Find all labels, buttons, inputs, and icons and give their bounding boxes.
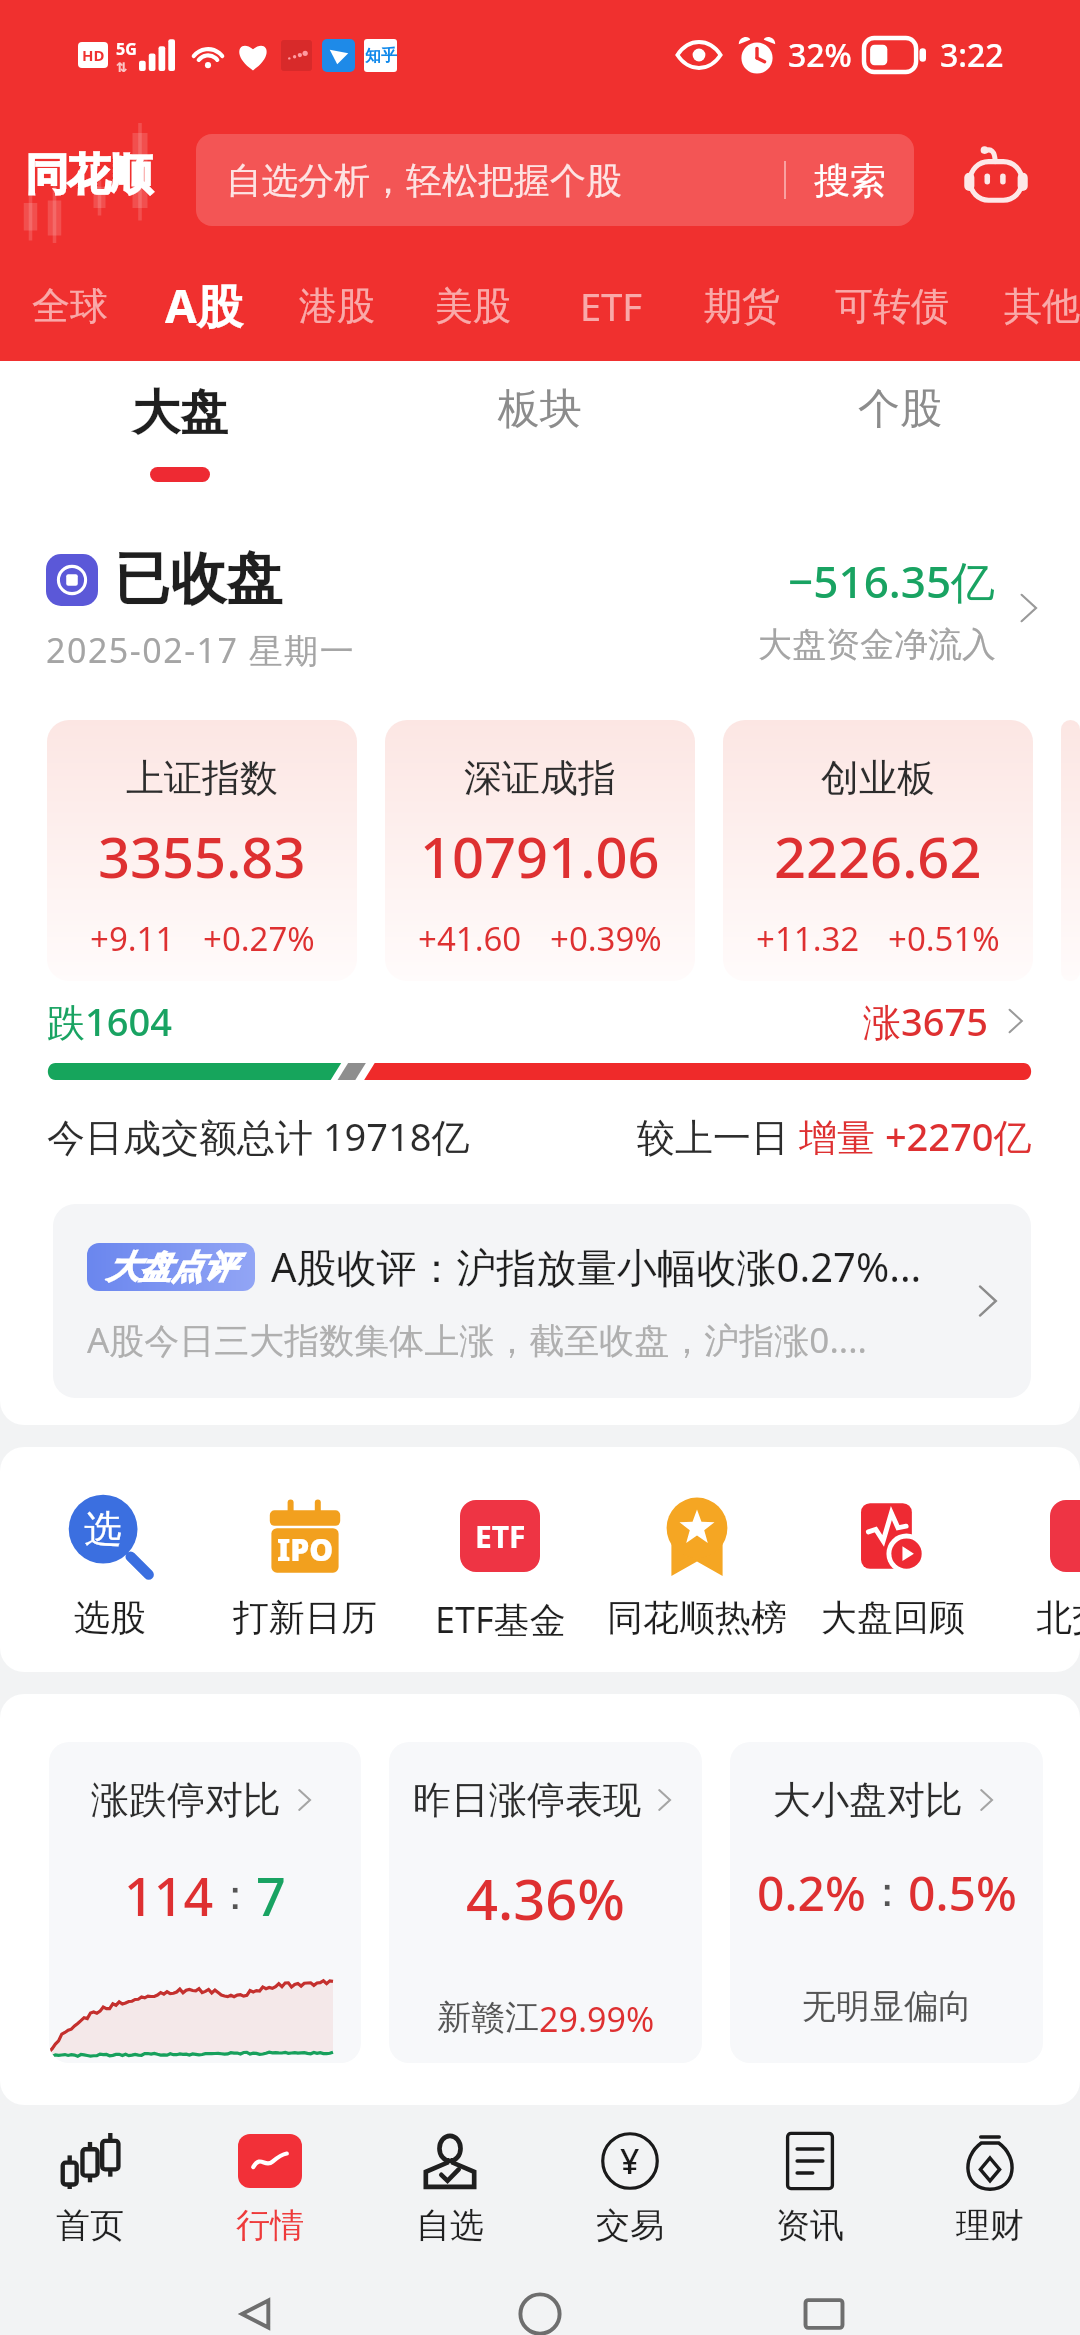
button[interactable]: 深证成指: [385, 720, 695, 981]
staticText: 北交所: [1036, 1595, 1080, 1640]
staticText: 5G: [116, 38, 137, 60]
staticText: HD: [82, 45, 105, 65]
button[interactable]: 已收盘: [0, 533, 1080, 683]
staticText: ：: [866, 1866, 908, 1919]
staticText: 创业板: [821, 754, 935, 802]
button[interactable]: 个股: [800, 361, 1000, 501]
staticText: 0.2%: [757, 1860, 866, 1925]
staticText: 增量 +2270亿: [799, 1110, 1032, 1162]
button[interactable]: 全球: [0, 250, 150, 361]
staticText: 已收盘: [114, 544, 282, 615]
button[interactable]: 涨跌停对比: [49, 1742, 361, 2063]
staticText: 打新日历: [233, 1595, 377, 1640]
button[interactable]: 板块: [440, 361, 640, 501]
button[interactable]: 理财: [900, 2121, 1080, 2255]
staticText: 个股: [858, 383, 942, 436]
staticText: 跌1604: [47, 995, 172, 1047]
staticText: 选股: [74, 1595, 146, 1640]
staticText: −516.35亿: [788, 551, 996, 611]
staticText: 自选: [416, 2204, 484, 2247]
button[interactable]: 上证指数: [47, 720, 357, 981]
staticText: 美股: [435, 282, 511, 330]
staticText: 7: [256, 1860, 286, 1931]
button[interactable]: 同花顺热榜: [602, 1493, 792, 1640]
staticText: 无明显偏向: [802, 1985, 972, 2028]
button[interactable]: 北交所: [995, 1493, 1080, 1640]
button[interactable]: A股: [124, 250, 284, 361]
staticText: 知乎: [365, 46, 397, 66]
button[interactable]: 大小盘对比: [730, 1742, 1043, 2063]
staticText: 搜索: [814, 158, 886, 203]
staticText: 大盘: [132, 383, 228, 443]
staticText: ETF: [475, 1516, 526, 1557]
button[interactable]: 港股: [257, 250, 417, 361]
button[interactable]: ETF: [405, 1493, 595, 1644]
staticText: 10791.06: [420, 818, 660, 894]
staticText: 可转债: [835, 282, 949, 330]
staticText: +11.32: [756, 916, 860, 961]
button[interactable]: 大盘回顾: [798, 1493, 988, 1640]
staticText: ETF基金: [435, 1595, 566, 1644]
staticText: A股今日三大指数集体上涨，截至收盘，沪指涨0....: [87, 1316, 867, 1364]
button[interactable]: 期货: [662, 250, 822, 361]
staticText: 自选分析，轻松把握个股: [226, 158, 622, 203]
button[interactable]: 大盘点评: [53, 1204, 1031, 1398]
staticText: 首页: [56, 2204, 124, 2247]
staticText: 期货: [704, 282, 780, 330]
staticText: IPO: [277, 1529, 334, 1570]
staticText: 4.36%: [466, 1860, 626, 1936]
staticText: 理财: [956, 2204, 1024, 2247]
staticText: ⇅: [116, 60, 127, 72]
staticText: ETF: [580, 280, 642, 332]
staticText: 昨日涨停表现: [413, 1776, 641, 1824]
button[interactable]: 自选: [360, 2121, 540, 2255]
staticText: +0.27%: [203, 916, 315, 961]
staticText: 2226.62: [774, 818, 982, 894]
staticText: A股收评：沪指放量小幅收涨0.27%...: [271, 1239, 922, 1294]
staticText: +41.60: [418, 916, 522, 961]
button[interactable]: 资讯: [720, 2121, 900, 2255]
staticText: 0.5%: [908, 1860, 1017, 1925]
staticText: ：: [214, 1869, 256, 1922]
button[interactable]: 选: [15, 1493, 205, 1640]
staticText: 同花顺: [26, 148, 152, 202]
button[interactable]: 美股: [393, 250, 553, 361]
staticText: 板块: [498, 383, 582, 436]
staticText: 114: [124, 1860, 214, 1931]
button[interactable]: 昨日涨停表现: [389, 1742, 702, 2063]
staticText: 行情: [236, 2204, 304, 2247]
staticText: 今日成交额总计 19718亿: [47, 1110, 470, 1162]
button[interactable]: AI 助手: [948, 134, 1044, 226]
staticText: 新赣江: [437, 1996, 539, 2039]
button[interactable]: 创业板: [723, 720, 1033, 981]
staticText: 上证指数: [126, 754, 278, 802]
button[interactable]: IPO: [210, 1493, 400, 1640]
other: Back: [228, 2293, 284, 2335]
staticText: 全球: [32, 282, 108, 330]
other: Home: [512, 2293, 568, 2335]
staticText: 大盘点评: [107, 1247, 235, 1287]
staticText: 同花顺热榜: [607, 1595, 787, 1640]
staticText: 大盘回顾: [821, 1595, 965, 1640]
staticText: +0.39%: [550, 916, 662, 961]
staticText: 选: [84, 1505, 122, 1553]
staticText: 2025-02-17 星期一: [46, 627, 356, 673]
button[interactable]: 自选分析，轻松把握个股: [196, 134, 914, 226]
staticText: 3355.83: [98, 818, 306, 894]
staticText: A股: [165, 274, 243, 337]
button[interactable]: 行情: [180, 2121, 360, 2255]
button[interactable]: ETF: [531, 250, 691, 361]
button[interactable]: 跌1604: [47, 995, 1032, 1047]
button[interactable]: 其他: [962, 250, 1080, 361]
staticText: 大小盘对比: [773, 1776, 963, 1824]
staticText: 涨3675: [863, 995, 988, 1047]
staticText: 其他: [1004, 282, 1080, 330]
button[interactable]: ¥: [540, 2121, 720, 2255]
staticText: 大盘资金净流入: [758, 623, 996, 666]
button[interactable]: 大盘: [80, 361, 280, 501]
staticText: 3:22: [940, 33, 1004, 77]
staticText: 深证成指: [464, 754, 616, 802]
button[interactable]: 首页: [0, 2121, 180, 2255]
staticText: +0.51%: [888, 916, 1000, 961]
button[interactable]: 可转债: [812, 250, 972, 361]
